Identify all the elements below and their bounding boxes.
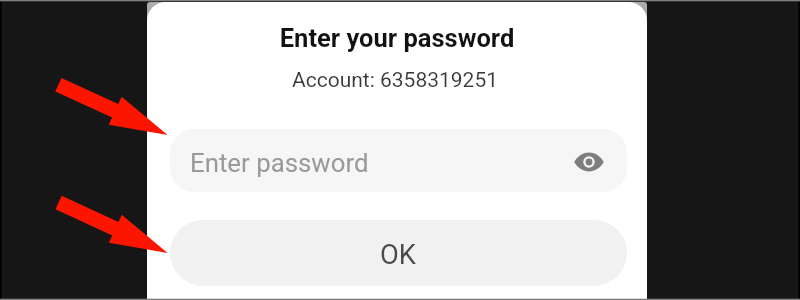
staticText: OK	[380, 239, 416, 271]
button[interactable]: Show password	[565, 138, 612, 185]
staticText: Account: 6358319251	[147, 68, 645, 93]
button[interactable]: Enter password	[170, 129, 627, 192]
button[interactable]: OK	[170, 220, 627, 286]
staticText: Enter password	[190, 148, 369, 178]
staticText: Enter your password	[147, 23, 647, 53]
